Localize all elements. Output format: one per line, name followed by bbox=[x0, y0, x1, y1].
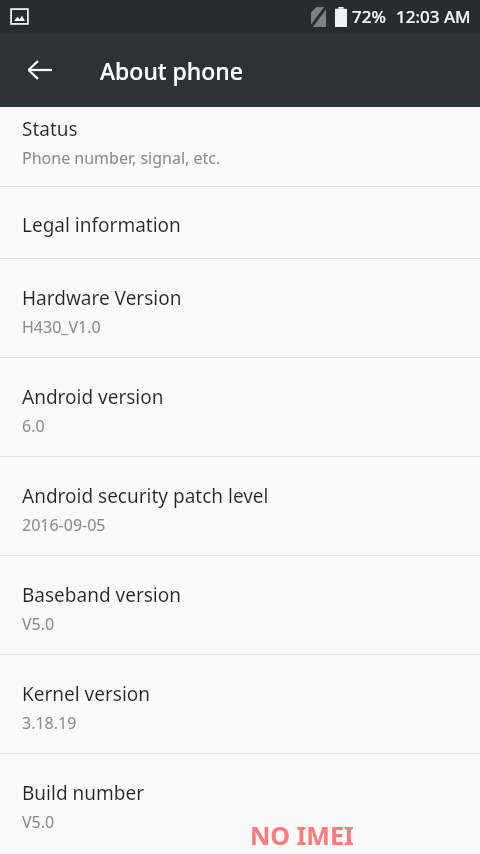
staticText: Kernel version bbox=[22, 681, 151, 707]
staticText: V5.0 bbox=[22, 811, 55, 833]
button[interactable]: Android version bbox=[0, 358, 480, 456]
staticText: 12:03 AM bbox=[396, 5, 471, 28]
staticText: 3.18.19 bbox=[22, 712, 77, 734]
staticText: Baseband version bbox=[22, 582, 181, 608]
staticText: H430_V1.0 bbox=[22, 316, 101, 338]
staticText: Build number bbox=[22, 780, 145, 806]
button[interactable]: Status bbox=[0, 107, 480, 186]
staticText: 2016-09-05 bbox=[22, 514, 106, 536]
staticText: 72% bbox=[352, 5, 386, 28]
staticText: Phone number, signal, etc. bbox=[22, 147, 221, 169]
staticText: Android version bbox=[22, 384, 164, 410]
staticText: About phone bbox=[100, 55, 243, 86]
button[interactable]: Legal information bbox=[0, 187, 480, 258]
button[interactable]: Kernel version bbox=[0, 655, 480, 753]
staticText: Legal information bbox=[22, 212, 181, 238]
staticText: 6.0 bbox=[22, 415, 45, 437]
button[interactable]: Hardware Version bbox=[0, 259, 480, 357]
button[interactable]: Android security patch level bbox=[0, 457, 480, 555]
button[interactable]: Back bbox=[16, 46, 64, 94]
button[interactable]: Build number bbox=[0, 754, 480, 852]
staticText: Status bbox=[22, 116, 78, 142]
staticText: Android security patch level bbox=[22, 483, 269, 509]
staticText: NO IMEI bbox=[250, 818, 370, 852]
staticText: V5.0 bbox=[22, 613, 55, 635]
button[interactable]: Baseband version bbox=[0, 556, 480, 654]
staticText: Hardware Version bbox=[22, 285, 182, 311]
